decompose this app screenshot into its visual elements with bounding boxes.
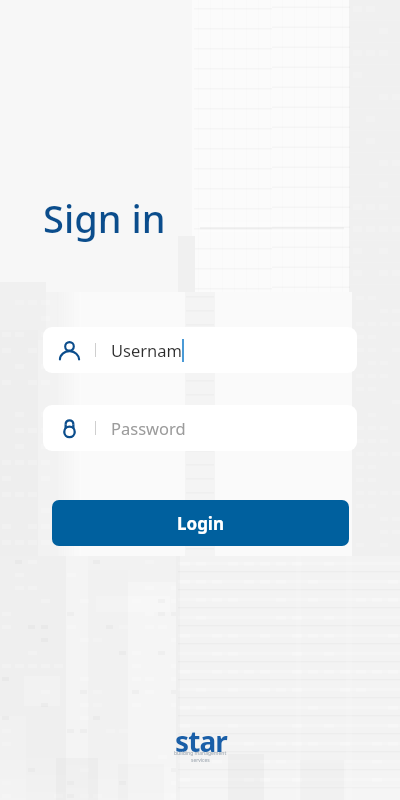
- other: Username: [57, 338, 82, 363]
- staticText: services: [191, 757, 210, 764]
- staticText: Usernam: [111, 339, 182, 361]
- staticText: Sign in: [43, 192, 166, 244]
- staticText: building management: [174, 750, 227, 757]
- button[interactable]: Password: [43, 405, 357, 451]
- staticText: Login: [177, 512, 225, 535]
- staticText: Password: [111, 417, 186, 439]
- other: Password: [57, 416, 82, 441]
- button[interactable]: Login: [52, 500, 349, 546]
- button[interactable]: Username: [43, 327, 357, 373]
- staticText: star: [175, 722, 227, 760]
